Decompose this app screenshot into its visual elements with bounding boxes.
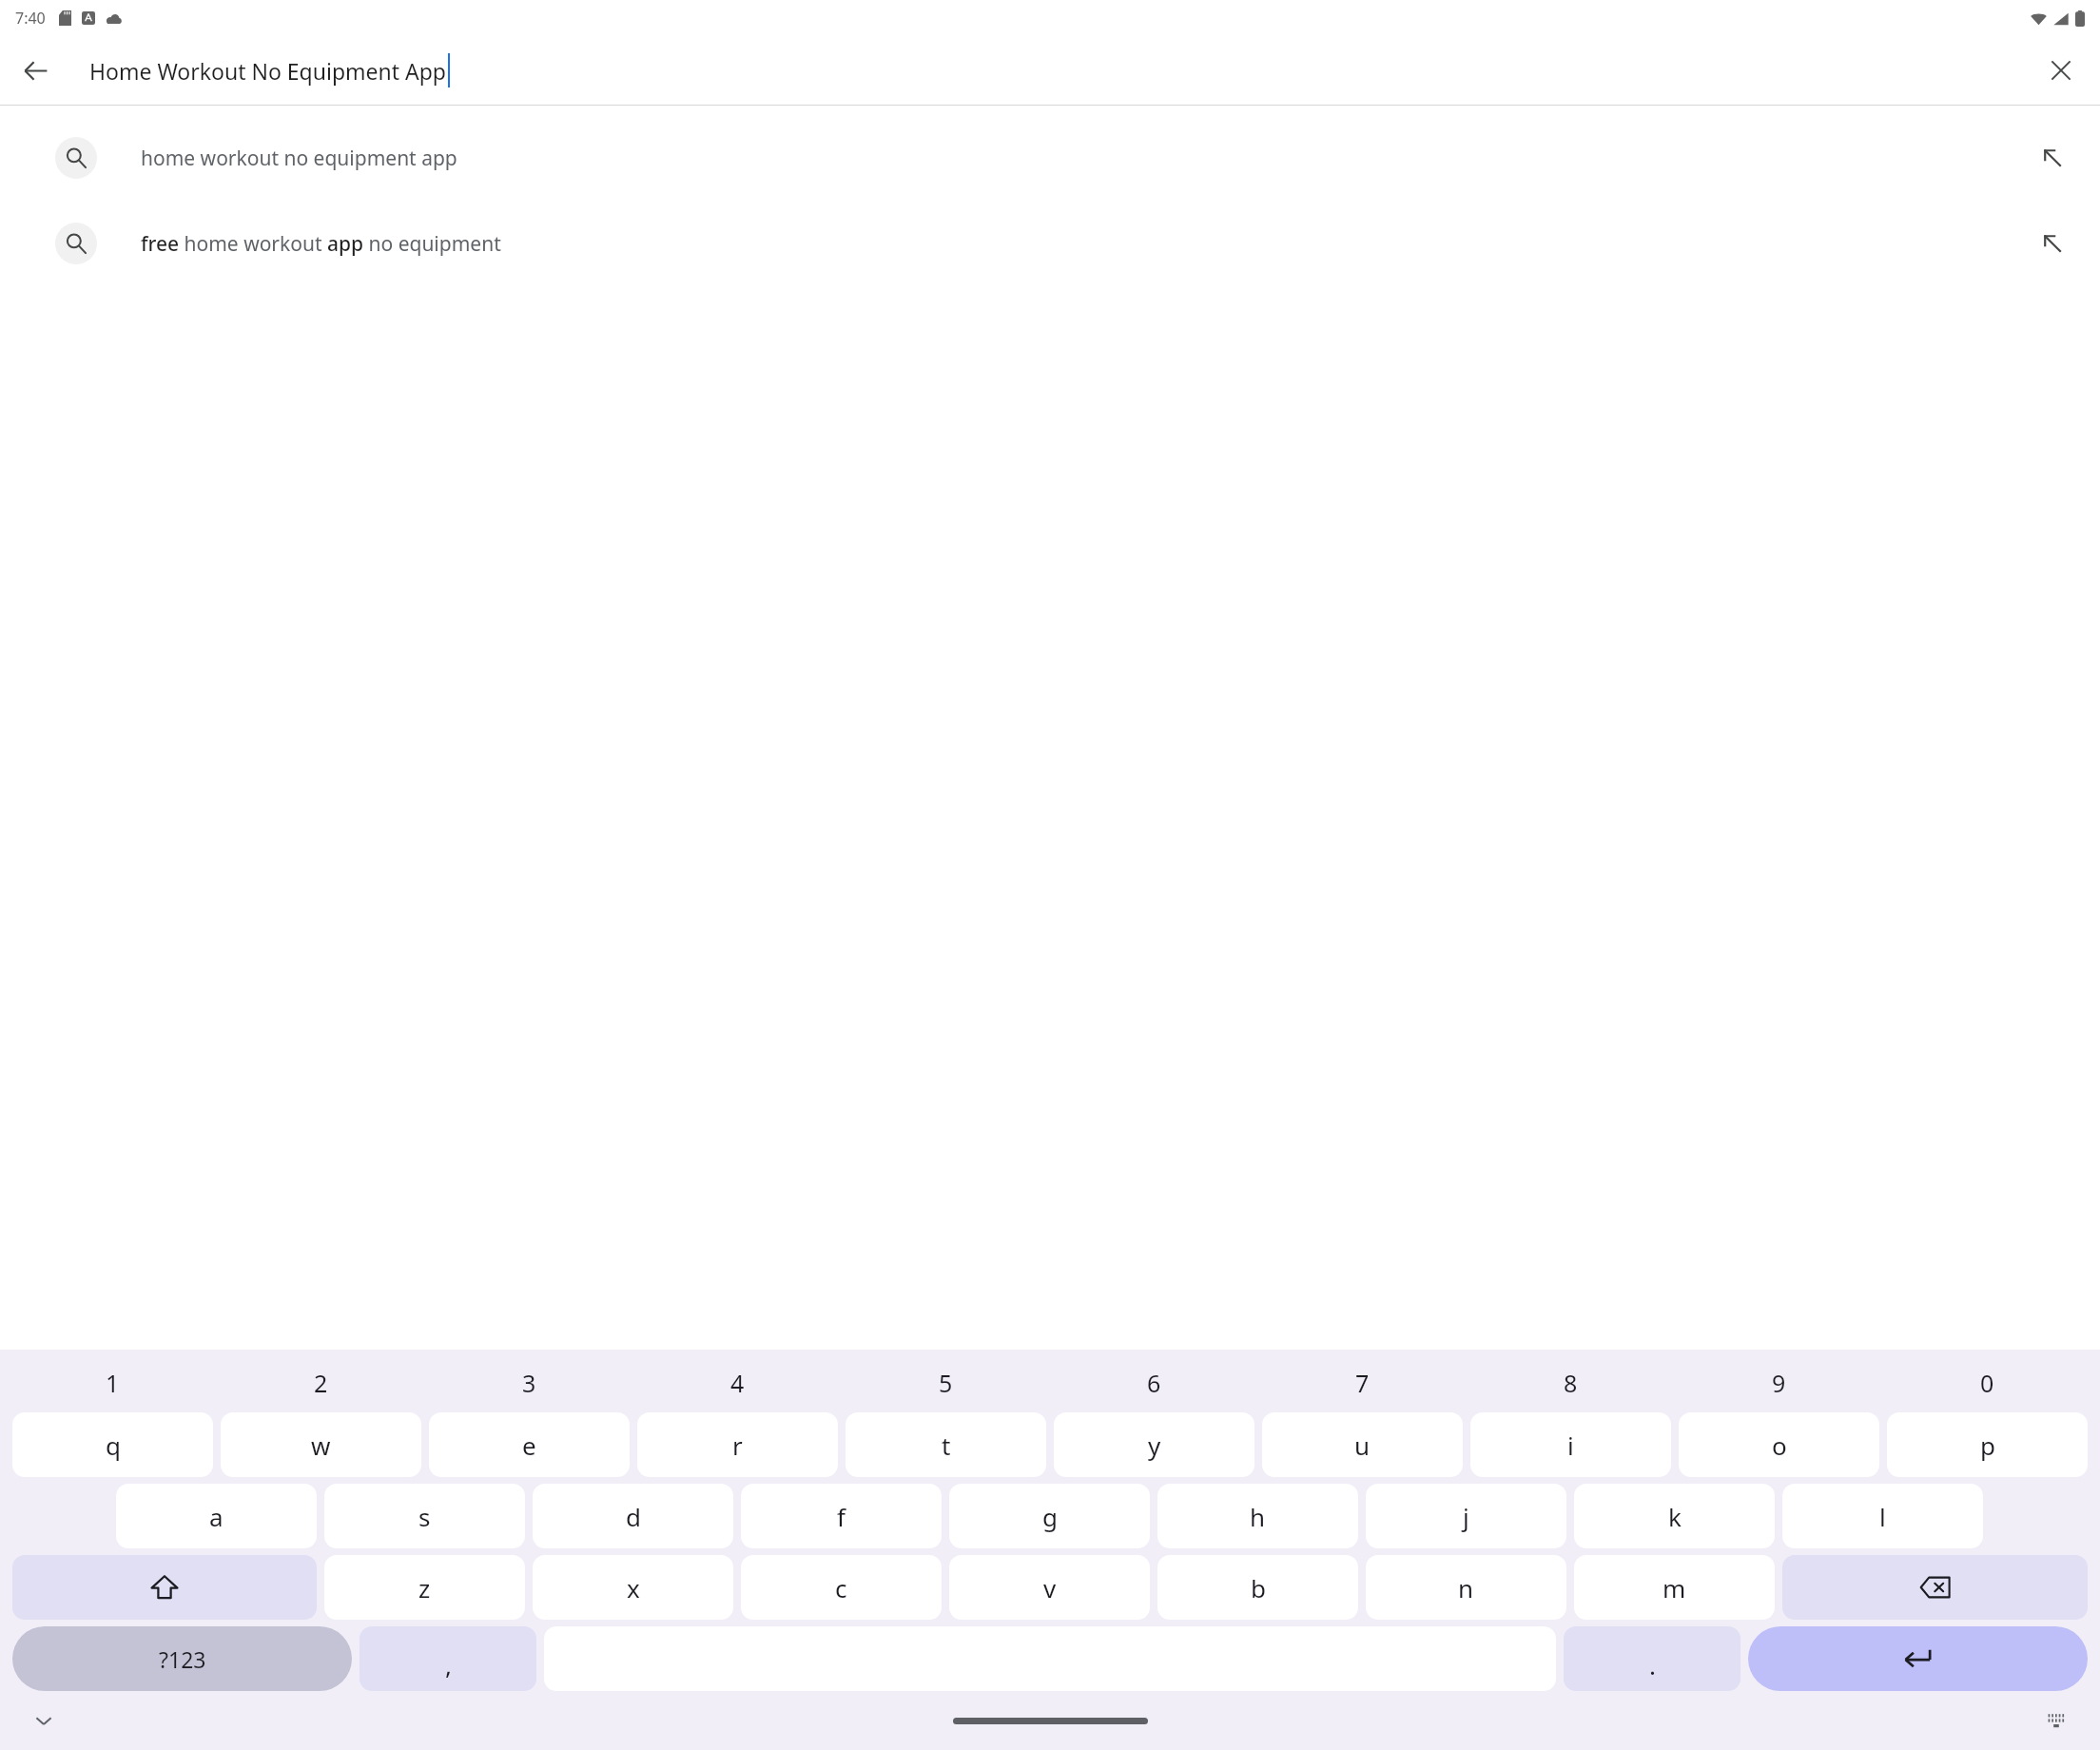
button[interactable]: b	[1157, 1555, 1358, 1620]
staticText: 4	[730, 1367, 745, 1399]
button[interactable]: home workout no equipment app	[0, 115, 2100, 201]
button[interactable]: t	[846, 1412, 1046, 1477]
button[interactable]: m	[1574, 1555, 1775, 1620]
staticText: x	[627, 1571, 640, 1604]
button[interactable]: 5	[842, 1357, 1050, 1409]
button[interactable]: w	[221, 1412, 421, 1477]
button[interactable]: u	[1262, 1412, 1463, 1477]
staticText: d	[626, 1500, 641, 1533]
button[interactable]: n	[1366, 1555, 1566, 1620]
staticText: Home Workout No Equipment App	[89, 56, 447, 86]
staticText: y	[1148, 1429, 1161, 1462]
staticText: 2	[314, 1367, 328, 1399]
staticText: w	[311, 1429, 331, 1462]
button[interactable]: Back	[10, 45, 61, 96]
button[interactable]: 0	[1883, 1357, 2091, 1409]
staticText: home workout no equipment app	[141, 145, 2030, 172]
button[interactable]: g	[949, 1484, 1150, 1548]
button[interactable]: Backspace	[1782, 1555, 2088, 1620]
staticText: n	[1458, 1571, 1474, 1604]
button[interactable]: 3	[425, 1357, 633, 1409]
button[interactable]: free home workout app no equipment	[0, 201, 2100, 286]
button[interactable]: e	[429, 1412, 630, 1477]
staticText: 7	[1355, 1367, 1370, 1399]
button[interactable]: h	[1157, 1484, 1358, 1548]
staticText: z	[418, 1571, 431, 1604]
button[interactable]: Enter	[1748, 1626, 2088, 1691]
button[interactable]: ?123	[12, 1626, 352, 1691]
button[interactable]: x	[533, 1555, 733, 1620]
staticText: .	[1649, 1648, 1656, 1682]
staticText: v	[1043, 1571, 1057, 1604]
staticText: k	[1668, 1500, 1682, 1533]
button[interactable]: k	[1574, 1484, 1775, 1548]
button[interactable]: 7	[1258, 1357, 1467, 1409]
button[interactable]: d	[533, 1484, 733, 1548]
button[interactable]: q	[12, 1412, 213, 1477]
button[interactable]: z	[324, 1555, 525, 1620]
button[interactable]: 2	[217, 1357, 425, 1409]
staticText: q	[106, 1429, 121, 1462]
button[interactable]: v	[949, 1555, 1150, 1620]
staticText: 7:40	[15, 8, 46, 29]
staticText: h	[1250, 1500, 1266, 1533]
staticText: ,	[445, 1648, 452, 1682]
staticText: f	[837, 1500, 846, 1533]
button[interactable]: r	[637, 1412, 838, 1477]
staticText: c	[835, 1571, 847, 1604]
button[interactable]: l	[1782, 1484, 1983, 1548]
staticText: 6	[1147, 1367, 1161, 1399]
staticText: 9	[1772, 1367, 1786, 1399]
staticText: r	[732, 1429, 743, 1462]
staticText: m	[1662, 1571, 1686, 1604]
staticText: o	[1772, 1429, 1787, 1462]
button[interactable]: Use this suggestion	[2030, 135, 2075, 181]
button[interactable]: i	[1470, 1412, 1671, 1477]
button[interactable]: Use this suggestion	[2030, 221, 2075, 266]
staticText: t	[942, 1429, 951, 1462]
button[interactable]: 4	[633, 1357, 842, 1409]
staticText: 5	[939, 1367, 953, 1399]
staticText: free home workout app no equipment	[141, 230, 2030, 258]
staticText: 8	[1564, 1367, 1578, 1399]
button[interactable]: Shift	[12, 1555, 317, 1620]
staticText: 0	[1980, 1367, 1994, 1399]
button[interactable]: f	[741, 1484, 942, 1548]
button[interactable]: o	[1679, 1412, 1879, 1477]
staticText: a	[209, 1500, 224, 1533]
button[interactable]: 9	[1675, 1357, 1883, 1409]
button[interactable]: a	[116, 1484, 317, 1548]
button[interactable]: 1	[9, 1357, 217, 1409]
button[interactable]: s	[324, 1484, 525, 1548]
button[interactable]: c	[741, 1555, 942, 1620]
button[interactable]: Change keyboard	[2035, 1700, 2077, 1741]
staticText: u	[1354, 1429, 1371, 1462]
staticText: l	[1879, 1500, 1886, 1533]
button[interactable]: 8	[1467, 1357, 1675, 1409]
staticText: s	[418, 1500, 431, 1533]
staticText: p	[1980, 1429, 1995, 1462]
button[interactable]: Hide keyboard	[23, 1700, 65, 1741]
button[interactable]: ,	[360, 1626, 536, 1691]
staticText: e	[522, 1429, 536, 1462]
button[interactable]: j	[1366, 1484, 1566, 1548]
button[interactable]: Clear query	[2035, 45, 2087, 96]
button[interactable]: 6	[1050, 1357, 1258, 1409]
staticText: 3	[522, 1367, 536, 1399]
staticText: j	[1463, 1500, 1469, 1533]
staticText: 1	[106, 1367, 120, 1399]
button[interactable]: p	[1887, 1412, 2088, 1477]
staticText: g	[1042, 1500, 1058, 1533]
staticText: b	[1251, 1571, 1266, 1604]
staticText: ?123	[159, 1644, 206, 1674]
staticText: i	[1567, 1429, 1574, 1462]
button[interactable]: .	[1564, 1626, 1740, 1691]
button[interactable]: y	[1054, 1412, 1254, 1477]
